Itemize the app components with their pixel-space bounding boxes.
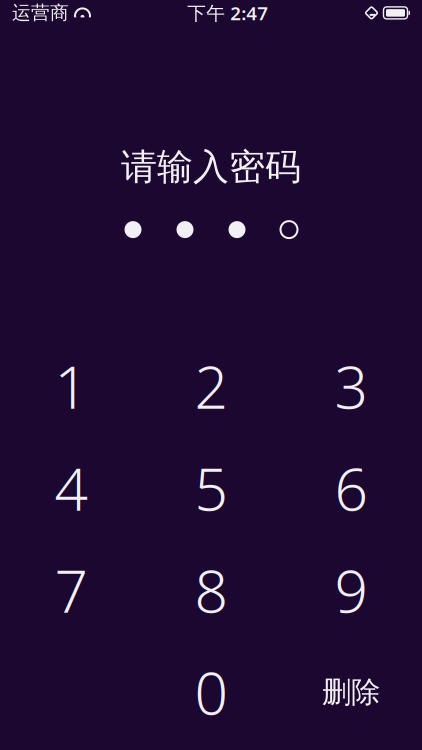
staticText: 7 bbox=[54, 551, 87, 629]
staticText: 0 bbox=[194, 653, 227, 731]
staticText: 请输入密码 bbox=[121, 145, 301, 189]
button[interactable]: 0 bbox=[141, 641, 281, 743]
staticText: 1 bbox=[54, 347, 87, 425]
staticText: 4 bbox=[54, 449, 87, 527]
button[interactable]: 7 bbox=[1, 539, 141, 641]
staticText: 3 bbox=[334, 347, 367, 425]
button[interactable]: 5 bbox=[141, 437, 281, 539]
staticText: 5 bbox=[194, 449, 227, 527]
staticText: 2 bbox=[194, 347, 227, 425]
staticText: 9 bbox=[334, 551, 367, 629]
staticText: 6 bbox=[334, 449, 367, 527]
staticText: 运营商 bbox=[12, 1, 69, 24]
button[interactable]: 删除 bbox=[281, 641, 421, 743]
button[interactable]: 8 bbox=[141, 539, 281, 641]
staticText: 8 bbox=[194, 551, 227, 629]
button[interactable]: 4 bbox=[1, 437, 141, 539]
button[interactable]: 2 bbox=[141, 335, 281, 437]
staticText: 下午 2:47 bbox=[187, 0, 268, 25]
button[interactable]: 3 bbox=[281, 335, 421, 437]
button[interactable]: 6 bbox=[281, 437, 421, 539]
button[interactable]: 9 bbox=[281, 539, 421, 641]
button[interactable]: 1 bbox=[1, 335, 141, 437]
staticText: 删除 bbox=[322, 674, 380, 710]
